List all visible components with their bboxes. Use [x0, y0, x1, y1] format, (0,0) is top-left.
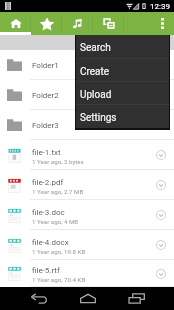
button[interactable]: Favorites [31, 12, 62, 35]
staticText: Search [80, 42, 111, 54]
button[interactable]: Expand [148, 230, 174, 260]
button[interactable]: Settings [76, 105, 169, 128]
staticText: file-3.doc [32, 208, 65, 217]
staticText: 1 Year ago, 19.8 KB [32, 248, 86, 255]
button[interactable]: Expand [148, 260, 174, 287]
staticText: file-1.txt [32, 148, 61, 157]
staticText: 12:39 [150, 2, 170, 11]
button[interactable]: Home [0, 12, 31, 35]
button[interactable]: Music [62, 12, 93, 35]
staticText: Settings [80, 112, 117, 124]
staticText: file-2.pdf [32, 178, 64, 187]
button[interactable]: Expand [148, 200, 174, 230]
button[interactable]: Expand [148, 140, 174, 170]
button[interactable]: Back [25, 287, 52, 310]
button[interactable]: file-1.txt [0, 140, 174, 170]
button[interactable]: Create [76, 59, 169, 82]
staticText: Folder2 [32, 91, 59, 100]
button[interactable]: file-4.docx [0, 230, 174, 260]
button[interactable]: Folder3 [0, 110, 174, 140]
button[interactable]: file-3.doc [0, 200, 174, 230]
staticText: Folder3 [32, 121, 59, 130]
button[interactable]: Home [74, 287, 101, 310]
staticText: Create [80, 66, 110, 78]
button[interactable]: Search [76, 35, 169, 59]
button[interactable]: file-5.rtf [0, 260, 174, 287]
button[interactable]: Folder1 [0, 50, 174, 80]
button[interactable]: More options [150, 12, 174, 35]
button[interactable]: Upload [76, 82, 169, 105]
button[interactable]: Recents [123, 287, 150, 310]
staticText: 1 Year ago, 2 bytes [32, 158, 84, 165]
staticText: 1 Year ago, 4 MB [32, 218, 79, 225]
button[interactable]: file-2.pdf [0, 170, 174, 200]
staticText: Upload [80, 89, 112, 101]
button[interactable]: Expand [148, 170, 174, 200]
staticText: 1 Year ago, 70.4 KB [32, 276, 86, 283]
staticText: 1 Year ago, 2.7 MB [32, 188, 84, 195]
staticText: file-4.docx [32, 238, 69, 247]
button[interactable]: Folder2 [0, 80, 174, 110]
button[interactable]: Apps [93, 12, 124, 35]
staticText: file-5.rtf [32, 266, 60, 275]
staticText: Folder1 [32, 61, 59, 70]
